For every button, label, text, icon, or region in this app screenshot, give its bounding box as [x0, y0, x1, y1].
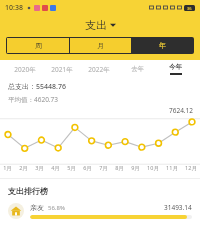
staticText: 56.8%: [48, 204, 65, 212]
button[interactable]: 周: [7, 38, 69, 53]
staticText: 10:38: [5, 3, 23, 13]
staticText: 10月: [147, 164, 159, 172]
staticText: 7月: [99, 164, 108, 172]
staticText: 9月: [131, 164, 140, 172]
other: 亲友: [8, 203, 24, 219]
button[interactable]: 2020年: [6, 60, 43, 78]
staticText: 平均值：4620.73: [8, 95, 59, 104]
staticText: 支出排行榜: [8, 186, 48, 196]
staticText: 4月: [51, 164, 60, 172]
staticText: 支出: [85, 18, 107, 32]
staticText: 5月: [67, 164, 76, 172]
staticText: 2020年: [14, 65, 36, 74]
staticText: 年: [159, 41, 166, 50]
staticText: 8月: [115, 164, 124, 172]
button[interactable]: 月: [70, 38, 131, 53]
button[interactable]: 今年: [156, 60, 194, 78]
staticText: 今年: [169, 63, 182, 71]
button[interactable]: 年: [132, 38, 193, 53]
staticText: 周: [35, 41, 42, 50]
button[interactable]: 支出: [0, 18, 200, 32]
staticText: 2022年: [88, 65, 110, 74]
staticText: 1月: [3, 164, 12, 172]
staticText: 12月: [185, 164, 197, 172]
staticText: 7624.12: [169, 106, 194, 115]
staticText: 去年: [131, 65, 144, 73]
staticText: 6月: [83, 164, 92, 172]
button[interactable]: 2021年: [43, 60, 80, 78]
staticText: 月: [97, 41, 104, 50]
staticText: 31493.14: [164, 203, 192, 212]
staticText: 11月: [166, 164, 178, 172]
button[interactable]: 2022年: [80, 60, 118, 78]
staticText: 2021年: [51, 65, 73, 74]
button[interactable]: 去年: [118, 60, 156, 78]
staticText: 亲友: [30, 203, 44, 212]
staticText: 36: [187, 6, 192, 11]
staticText: 总支出：55448.76: [8, 82, 66, 92]
button[interactable]: 亲友: [8, 203, 192, 219]
staticText: 2月: [19, 164, 28, 172]
staticText: 3月: [35, 164, 44, 172]
